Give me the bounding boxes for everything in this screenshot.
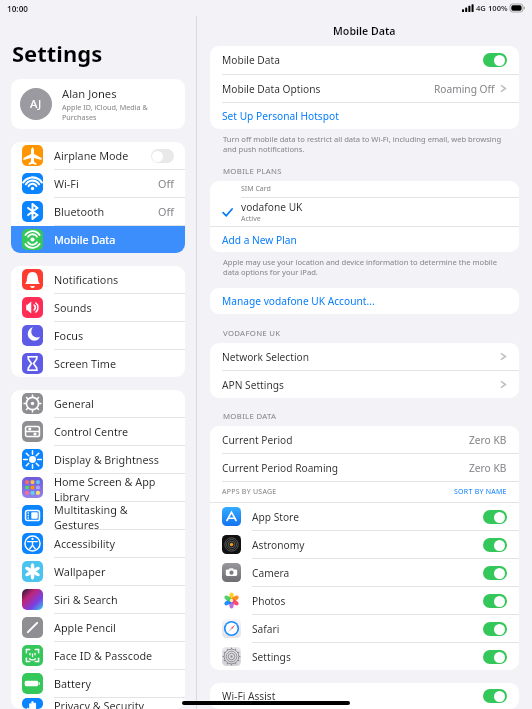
button[interactable]: Add a New Plan: [210, 227, 519, 252]
button[interactable]: SORT BY NAME: [454, 487, 507, 497]
button[interactable]: Set Up Personal Hotspot: [210, 103, 519, 129]
staticText: Off: [158, 204, 174, 219]
staticText: 4G: [476, 3, 486, 13]
button[interactable]: On: [483, 622, 507, 636]
button[interactable]: Mobile Data: [11, 226, 185, 253]
button[interactable]: On: [483, 689, 507, 703]
staticText: Apple may use your location and device i…: [223, 257, 503, 277]
staticText: Apple Pencil: [54, 620, 116, 635]
button[interactable]: Photos: [210, 587, 519, 614]
staticText: Wi-Fi Assist: [222, 689, 276, 703]
button[interactable]: Focus: [11, 322, 185, 349]
staticText: Network Selection: [222, 350, 310, 364]
staticText: Apple ID, iCloud, Media & Purchases: [62, 102, 176, 122]
staticText: VODAFONE UK: [223, 328, 281, 339]
staticText: Accessibility: [54, 536, 115, 551]
staticText: Display & Brightness: [54, 452, 159, 467]
staticText: Control Centre: [54, 424, 129, 439]
staticText: Roaming Off: [434, 82, 495, 96]
button[interactable]: Wi-Fi: [11, 170, 185, 197]
button[interactable]: APN Settings: [210, 371, 519, 398]
button[interactable]: Home Screen & App Library: [11, 474, 185, 501]
staticText: Turn off mobile data to restrict all dat…: [223, 134, 503, 154]
staticText: Bluetooth: [54, 204, 105, 219]
staticText: Home Screen & App Library: [54, 474, 174, 501]
staticText: Focus: [54, 328, 84, 343]
button[interactable]: AJ: [11, 79, 185, 129]
button[interactable]: On: [483, 53, 507, 67]
staticText: MOBILE PLANS: [223, 166, 282, 177]
button[interactable]: Mobile Data: [210, 46, 519, 74]
button[interactable]: Face ID & Passcode: [11, 642, 185, 669]
button[interactable]: Battery: [11, 670, 185, 697]
staticText: Privacy & Security: [54, 698, 145, 709]
button[interactable]: Accessibility: [11, 530, 185, 557]
staticText: Settings: [12, 38, 103, 68]
staticText: Camera: [252, 566, 290, 580]
button[interactable]: On: [483, 566, 507, 580]
staticText: Notifications: [54, 272, 119, 287]
button[interactable]: Multitasking & Gestures: [11, 502, 185, 529]
staticText: App Store: [252, 510, 299, 524]
button[interactable]: Manage vodafone UK Account...: [210, 288, 519, 314]
staticText: Mobile Data: [54, 232, 116, 247]
button[interactable]: Privacy & Security: [11, 698, 185, 709]
button[interactable]: Astronomy: [210, 531, 519, 558]
button[interactable]: Wallpaper: [11, 558, 185, 585]
button[interactable]: Wi-Fi Assist: [210, 683, 519, 709]
staticText: Settings: [252, 650, 291, 664]
staticText: Manage vodafone UK Account...: [222, 294, 375, 308]
staticText: Current Period: [222, 433, 293, 447]
button[interactable]: Settings: [210, 643, 519, 670]
button[interactable]: On: [483, 650, 507, 664]
button[interactable]: Current Period: [210, 426, 519, 453]
button[interactable]: Camera: [210, 559, 519, 586]
button[interactable]: Safari: [210, 615, 519, 642]
button[interactable]: On: [483, 510, 507, 524]
staticText: Safari: [252, 622, 280, 636]
staticText: General: [54, 396, 94, 411]
staticText: Photos: [252, 594, 286, 608]
staticText: Alan Jones: [62, 86, 117, 101]
staticText: Multitasking & Gestures: [54, 502, 174, 529]
button[interactable]: Control Centre: [11, 418, 185, 445]
button[interactable]: Sounds: [11, 294, 185, 321]
staticText: Wallpaper: [54, 564, 106, 579]
staticText: Off: [158, 176, 174, 191]
button[interactable]: Apple Pencil: [11, 614, 185, 641]
button[interactable]: App Store: [210, 503, 519, 530]
staticText: APN Settings: [222, 378, 284, 392]
staticText: Siri & Search: [54, 592, 118, 607]
button[interactable]: Mobile Data Options: [210, 75, 519, 102]
staticText: 100%: [488, 3, 508, 13]
button[interactable]: Bluetooth: [11, 198, 185, 225]
staticText: Wi-Fi: [54, 176, 79, 191]
button[interactable]: On: [483, 594, 507, 608]
staticText: Astronomy: [252, 538, 305, 552]
button[interactable]: Airplane Mode: [11, 142, 185, 169]
staticText: 10:00: [7, 3, 28, 14]
button[interactable]: Off: [151, 149, 174, 163]
staticText: Sounds: [54, 300, 92, 315]
staticText: Screen Time: [54, 356, 116, 371]
button[interactable]: Siri & Search: [11, 586, 185, 613]
staticText: APPS BY USAGE: [222, 487, 277, 497]
staticText: Add a New Plan: [222, 233, 297, 247]
staticText: Active: [241, 214, 261, 224]
staticText: Face ID & Passcode: [54, 648, 153, 663]
button[interactable]: Current Period Roaming: [210, 454, 519, 481]
button[interactable]: Screen Time: [11, 350, 185, 377]
staticText: AJ: [30, 96, 42, 112]
button[interactable]: On: [483, 538, 507, 552]
staticText: Set Up Personal Hotspot: [222, 109, 339, 123]
button[interactable]: Network Selection: [210, 343, 519, 370]
button[interactable]: vodafone UK: [210, 198, 519, 226]
button[interactable]: Notifications: [11, 266, 185, 293]
staticText: SIM Card: [241, 184, 271, 194]
staticText: Battery: [54, 676, 91, 691]
staticText: Current Period Roaming: [222, 461, 339, 475]
staticText: vodafone UK: [241, 200, 303, 214]
staticText: SORT BY NAME: [454, 487, 507, 497]
button[interactable]: General: [11, 390, 185, 417]
button[interactable]: Display & Brightness: [11, 446, 185, 473]
